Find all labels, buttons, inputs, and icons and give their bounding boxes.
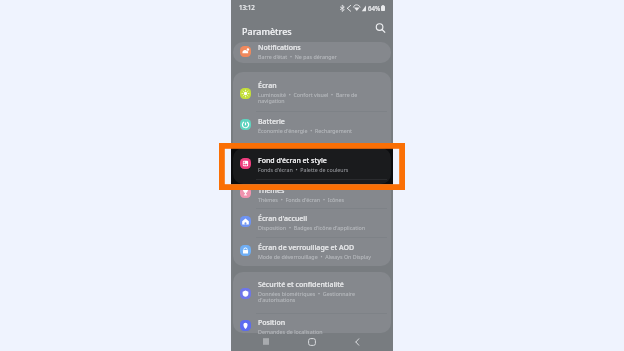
button[interactable]: Applications récentes (260, 334, 272, 349)
staticText: Batterie (258, 117, 285, 127)
staticText: Fond d'écran et style (258, 156, 327, 166)
staticText: Mode de déverrouillage • Always On Displ… (258, 253, 371, 260)
staticText: Paramètres (242, 25, 292, 37)
button[interactable]: Thèmes (231, 179, 393, 184)
staticText: Thèmes (258, 186, 285, 196)
button[interactable]: Thèmes (231, 179, 393, 209)
button[interactable]: Batterie (231, 111, 393, 147)
staticText: Sécurité et confidentialité (258, 280, 344, 290)
staticText: Fonds d'écran • Palette de couleurs (258, 166, 349, 173)
button[interactable]: Fond d'écran et style (231, 148, 393, 179)
staticText: 64% (368, 4, 381, 12)
button[interactable]: Accueil (306, 334, 318, 349)
button[interactable]: Écran (231, 72, 393, 112)
staticText: Données biométriques • Gestionnaire d'au… (258, 290, 376, 304)
button[interactable]: Position (231, 313, 393, 333)
staticText: Thèmes • Fonds d'écran • Icônes (258, 196, 345, 203)
button[interactable]: Rechercher (373, 21, 387, 35)
staticText: Écran (258, 81, 277, 91)
staticText: 13:12 (239, 3, 255, 11)
staticText: Demandes de localisation (258, 328, 323, 335)
button[interactable]: Retour (351, 334, 363, 349)
button[interactable]: Écran de verrouillage et AOD (231, 237, 393, 266)
staticText: Économie d'énergie • Rechargement (258, 127, 352, 134)
staticText: Notifications (258, 43, 301, 53)
button[interactable]: Sécurité et confidentialité (231, 272, 393, 313)
staticText: Position (258, 318, 286, 328)
staticText: Luminosité • Confort visuel • Barre de n… (258, 91, 376, 105)
staticText: Écran de verrouillage et AOD (258, 243, 355, 253)
staticText: Disposition • Badges d'icône d'applicati… (258, 224, 366, 231)
button[interactable]: Notifications (231, 42, 393, 63)
button[interactable]: Écran d'accueil (231, 208, 393, 237)
staticText: Écran d'accueil (258, 214, 308, 224)
staticText: Barre d'état • Ne pas déranger (258, 53, 337, 60)
